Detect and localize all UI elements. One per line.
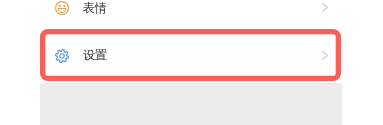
staticText: 设置 [83,47,107,62]
button[interactable]: 设置 [40,32,341,80]
staticText: 设置 [83,47,107,62]
button[interactable]: 表情 [40,0,341,32]
staticText: 表情 [83,0,107,15]
staticText: 表情 [83,0,107,15]
